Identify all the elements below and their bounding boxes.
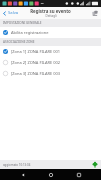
button[interactable]: Back [0, 7, 22, 19]
staticText: Registra su evento [30, 8, 71, 14]
button[interactable]: [Zona 2] ZONA FILARE 002 [0, 57, 101, 68]
staticText: Salva [8, 10, 19, 16]
button[interactable]: Stato sincronizzazione [92, 162, 98, 168]
button[interactable]: Azioni [89, 7, 101, 19]
staticText: [Zona 1] ZONA FILARE 001 [11, 49, 61, 54]
staticText: aggiornato 10:13:04 [3, 163, 31, 167]
button[interactable]: Recents [73, 169, 84, 180]
button[interactable]: Back [17, 169, 28, 180]
staticText: Abilita registrazione [11, 30, 49, 35]
staticText: IMPOSTAZIONI GENERALE [3, 21, 42, 25]
staticText: [Zona 3] ZONA FILARE 003 [11, 71, 61, 76]
staticText: ASSOCIAZIONE ZONE [3, 40, 35, 44]
other: Back [2, 11, 7, 16]
button[interactable]: [Zona 3] ZONA FILARE 003 [0, 68, 101, 79]
button[interactable]: Abilita registrazione [0, 27, 101, 38]
button[interactable]: Home [45, 169, 56, 180]
staticText: Dettagli [45, 14, 57, 18]
button[interactable]: [Zona 1] ZONA FILARE 001 [0, 46, 101, 57]
staticText: [Zona 2] ZONA FILARE 002 [11, 60, 61, 65]
